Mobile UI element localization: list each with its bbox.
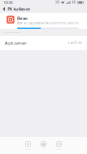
staticText: Açık zaman [5, 40, 26, 46]
staticText: Ekran ve uygulama kullanım sürelerini yö… [17, 21, 79, 25]
staticText: 4 sa 30 dk [67, 41, 81, 45]
button[interactable]: Ev [36, 137, 51, 154]
button[interactable]: Kumanda [20, 137, 36, 154]
button[interactable]: Back [0, 5, 32, 13]
staticText: 10:36 [3, 0, 12, 5]
staticText: Ev [42, 149, 44, 150]
button[interactable]: Açık zaman [0, 36, 87, 50]
staticText: Ayarlar [56, 149, 62, 150]
button[interactable]: Ayarlar [51, 137, 67, 154]
staticText: Ekran [17, 16, 28, 21]
staticText: KULLANIM AYRINTILARI [5, 32, 20, 33]
staticText: HD [55, 1, 59, 4]
staticText: Kumanda [24, 149, 31, 150]
staticText: PX kullanım [7, 6, 30, 12]
staticText: 88 [72, 1, 76, 4]
